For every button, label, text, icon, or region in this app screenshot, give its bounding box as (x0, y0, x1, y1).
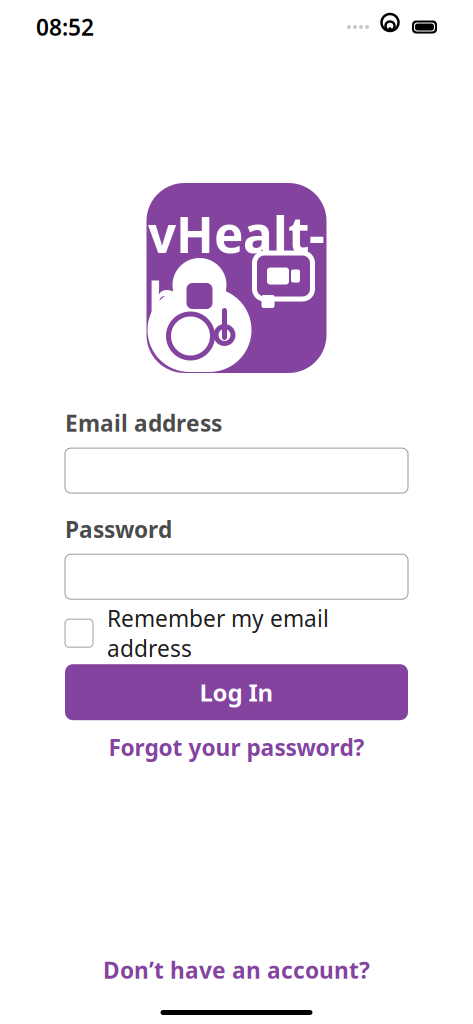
button[interactable]: Forgot your password? (65, 734, 408, 760)
staticText: Email address (65, 408, 222, 438)
staticText: Remember my email address (107, 603, 329, 663)
staticText: Log In (199, 676, 273, 708)
staticText: Password (65, 514, 172, 544)
staticText: 08:52 (36, 12, 94, 42)
staticText: Forgot your password? (108, 732, 364, 762)
button[interactable]: Password (65, 554, 408, 599)
staticText: vHealth (148, 201, 325, 332)
button[interactable]: Don’t have an account? (65, 956, 408, 984)
button[interactable]: Remember my email address (65, 615, 408, 651)
button[interactable]: Log In (65, 664, 408, 720)
button[interactable]: Email address (65, 448, 408, 493)
staticText: Don’t have an account? (103, 955, 370, 985)
